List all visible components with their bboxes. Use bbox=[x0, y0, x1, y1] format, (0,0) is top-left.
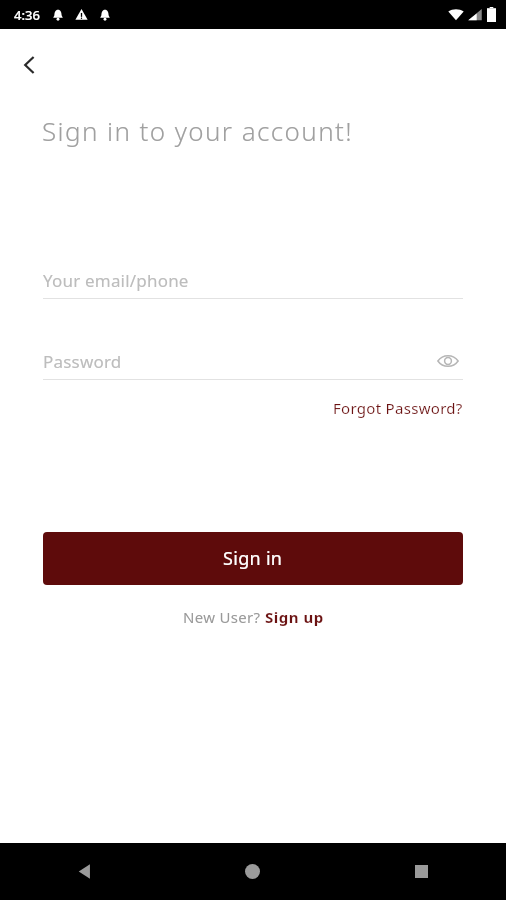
button[interactable]: Show password bbox=[433, 346, 463, 376]
staticText: Sign in to your account! bbox=[42, 113, 354, 148]
button[interactable]: Password bbox=[43, 343, 463, 379]
button[interactable]: Sign up bbox=[265, 607, 324, 627]
button[interactable]: Back bbox=[8, 43, 52, 87]
button[interactable]: Recent apps bbox=[337, 843, 506, 900]
button[interactable]: Your email/phone bbox=[43, 262, 463, 298]
staticText: Sign in bbox=[223, 546, 283, 571]
button[interactable]: Sign in bbox=[43, 532, 463, 585]
staticText: Password bbox=[43, 350, 122, 373]
button[interactable]: Back bbox=[0, 843, 168, 900]
button[interactable]: Forgot Password? bbox=[333, 396, 463, 420]
staticText: New User? bbox=[183, 607, 265, 627]
staticText: Your email/phone bbox=[43, 269, 189, 292]
button[interactable]: Home bbox=[168, 843, 337, 900]
staticText: Forgot Password? bbox=[333, 398, 463, 418]
staticText: Sign up bbox=[265, 607, 324, 627]
staticText: 4:36 bbox=[14, 6, 40, 24]
